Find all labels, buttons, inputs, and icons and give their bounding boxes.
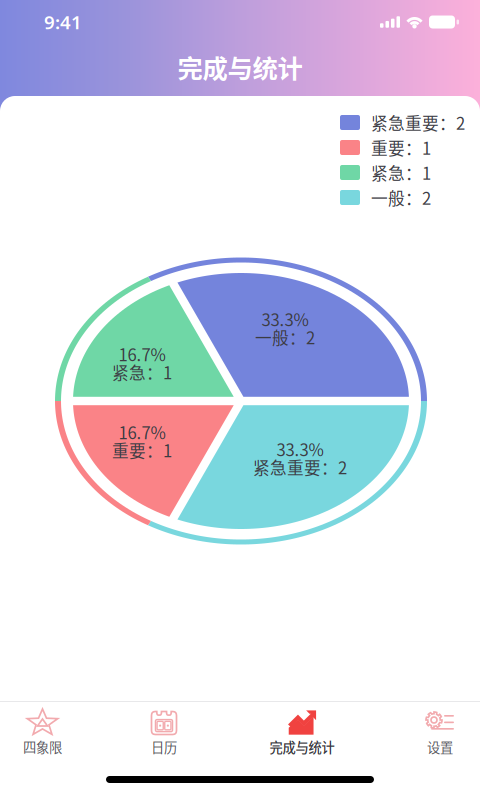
button[interactable]: 日历 <box>109 702 219 764</box>
staticText: 紧急：1 <box>371 160 431 184</box>
staticText: 16.7% <box>118 342 165 366</box>
staticText: 9:41 <box>44 10 82 34</box>
button[interactable]: 设置 <box>400 702 480 764</box>
staticText: 四象限 <box>23 737 62 756</box>
staticText: 设置 <box>427 737 453 756</box>
staticText: 紧急重要：2 <box>371 110 465 134</box>
staticText: 33.3% <box>276 437 323 461</box>
staticText: 紧急：1 <box>112 360 172 384</box>
staticText: 紧急重要：2 <box>253 455 347 479</box>
button[interactable]: 完成与统计 <box>247 702 357 764</box>
button[interactable]: 四象限 <box>0 702 90 764</box>
staticText: 33.3% <box>261 307 308 331</box>
staticText: 重要：1 <box>112 438 172 462</box>
staticText: 一般：2 <box>371 185 431 209</box>
staticText: 一般：2 <box>255 325 315 349</box>
staticText: 完成与统计 <box>269 737 334 756</box>
staticText: 日历 <box>151 737 177 756</box>
staticText: 16.7% <box>118 420 165 444</box>
staticText: 重要：1 <box>371 135 431 159</box>
staticText: 完成与统计 <box>177 49 302 85</box>
